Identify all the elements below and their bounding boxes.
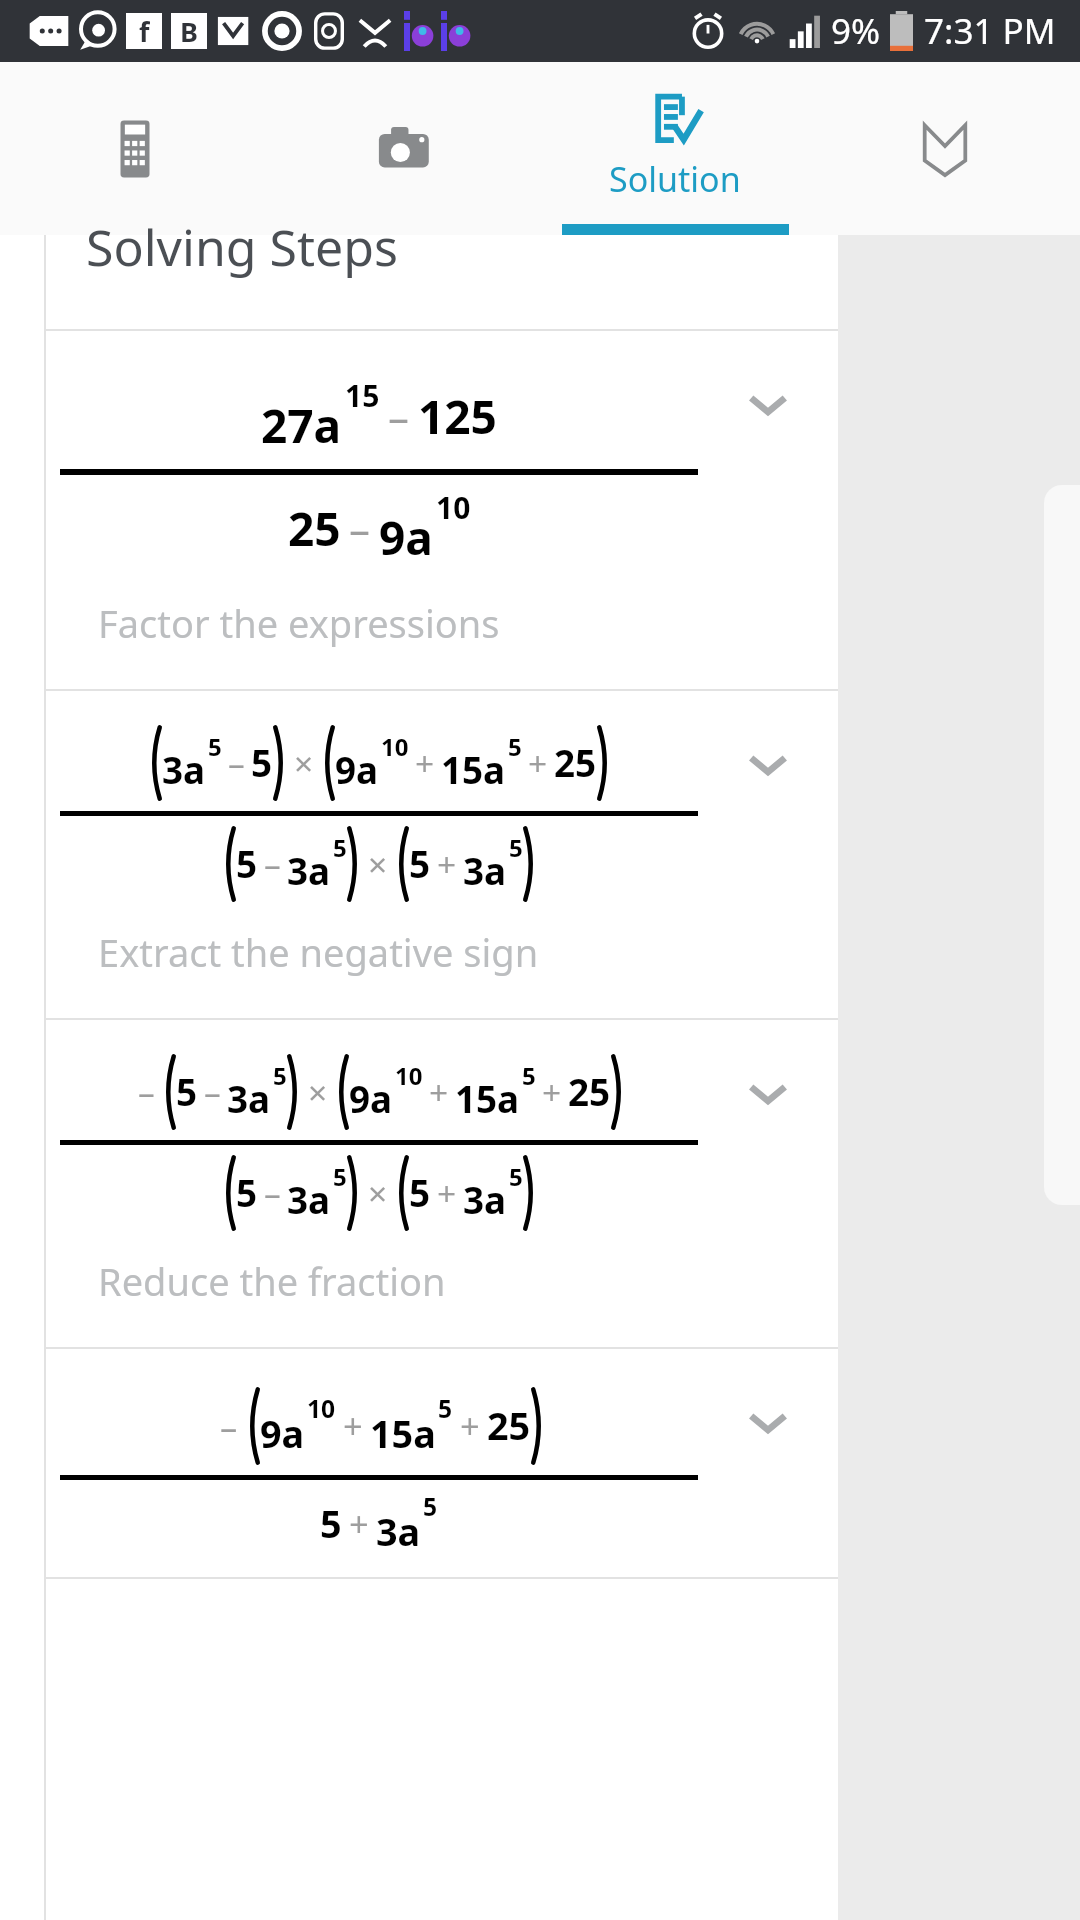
staticText: 10 — [307, 1392, 336, 1426]
staticText: 3a — [463, 846, 507, 896]
staticText: – — [204, 1069, 221, 1115]
staticText: Solution — [609, 156, 741, 202]
staticText: 5 — [423, 1490, 438, 1524]
staticText: 5 — [509, 831, 523, 864]
staticText: × — [368, 841, 388, 887]
staticText: 5 — [251, 738, 273, 788]
staticText: 5 — [273, 1059, 287, 1092]
staticText: 27a — [261, 394, 342, 457]
staticText: f — [139, 13, 150, 49]
staticText: – — [349, 500, 371, 557]
staticText: 25 — [568, 1067, 611, 1117]
staticText: 3a — [376, 1506, 421, 1557]
staticText: + — [429, 1069, 449, 1115]
staticText: + — [437, 1170, 457, 1216]
staticText: – — [138, 1069, 155, 1115]
staticText: × — [368, 1170, 388, 1216]
other: Expand step — [740, 1393, 796, 1449]
staticText: 25 — [554, 738, 597, 788]
staticText: × — [294, 740, 314, 786]
staticText: 15 — [345, 375, 380, 416]
staticText: B — [180, 13, 198, 49]
staticText: Factor the expressions — [98, 597, 500, 649]
button[interactable]: 27a — [46, 331, 838, 691]
staticText: – — [264, 1170, 281, 1216]
staticText: 3a — [227, 1074, 271, 1124]
staticText: 5 — [236, 1168, 258, 1218]
staticText: 3a — [463, 1175, 507, 1225]
staticText: Extract the negative sign — [98, 926, 539, 978]
staticText: 9a — [349, 1074, 393, 1124]
staticText: 5 — [176, 1067, 198, 1117]
staticText: – — [264, 841, 281, 887]
button[interactable]: Solution — [540, 62, 810, 235]
other: Expand step — [740, 375, 796, 431]
staticText: 5 — [208, 730, 222, 763]
staticText: 9a — [335, 745, 379, 795]
other: Expand step — [740, 1064, 796, 1120]
staticText: + — [343, 1402, 363, 1449]
staticText: – — [388, 388, 410, 445]
staticText: 3a — [162, 745, 206, 795]
staticText: 9a — [379, 506, 433, 569]
staticText: Reduce the fraction — [98, 1255, 446, 1307]
staticText: 25 — [288, 497, 341, 560]
staticText: 10 — [395, 1059, 423, 1092]
button[interactable]: 3a — [46, 691, 838, 1020]
staticText: 5 — [522, 1059, 536, 1092]
staticText: 7:31 PM — [924, 7, 1056, 55]
staticText: 5 — [438, 1392, 453, 1426]
button[interactable]: – — [46, 1349, 838, 1579]
other: Expand step — [740, 735, 796, 791]
staticText: – — [220, 1403, 238, 1450]
staticText: + — [415, 740, 435, 786]
staticText: + — [349, 1500, 369, 1547]
staticText: 5 — [409, 839, 431, 889]
staticText: 5 — [320, 1498, 342, 1549]
staticText: – — [228, 740, 245, 786]
staticText: 9a — [260, 1408, 305, 1459]
staticText: 3a — [287, 846, 331, 896]
staticText: 5 — [333, 1160, 347, 1193]
staticText: 5 — [409, 1168, 431, 1218]
staticText: × — [308, 1069, 328, 1115]
staticText: 125 — [418, 385, 497, 448]
staticText: + — [528, 740, 548, 786]
staticText: 15a — [441, 745, 506, 795]
staticText: 5 — [236, 839, 258, 889]
staticText: 10 — [436, 487, 471, 528]
staticText: 3a — [287, 1175, 331, 1225]
staticText: Solving Steps — [86, 213, 398, 281]
staticText: 5 — [509, 1160, 523, 1193]
staticText: + — [542, 1069, 562, 1115]
staticText: + — [460, 1402, 480, 1449]
button[interactable]: Camera — [270, 62, 540, 235]
button[interactable]: Calculator — [0, 62, 270, 235]
staticText: 9% — [831, 7, 881, 55]
staticText: 25 — [487, 1400, 531, 1451]
staticText: 10 — [381, 730, 409, 763]
button[interactable]: – — [46, 1020, 838, 1349]
staticText: 15a — [370, 1408, 436, 1459]
staticText: 5 — [333, 831, 347, 864]
staticText: + — [437, 841, 457, 887]
staticText: 5 — [508, 730, 522, 763]
staticText: 15a — [455, 1074, 520, 1124]
button[interactable]: Book — [810, 62, 1080, 235]
